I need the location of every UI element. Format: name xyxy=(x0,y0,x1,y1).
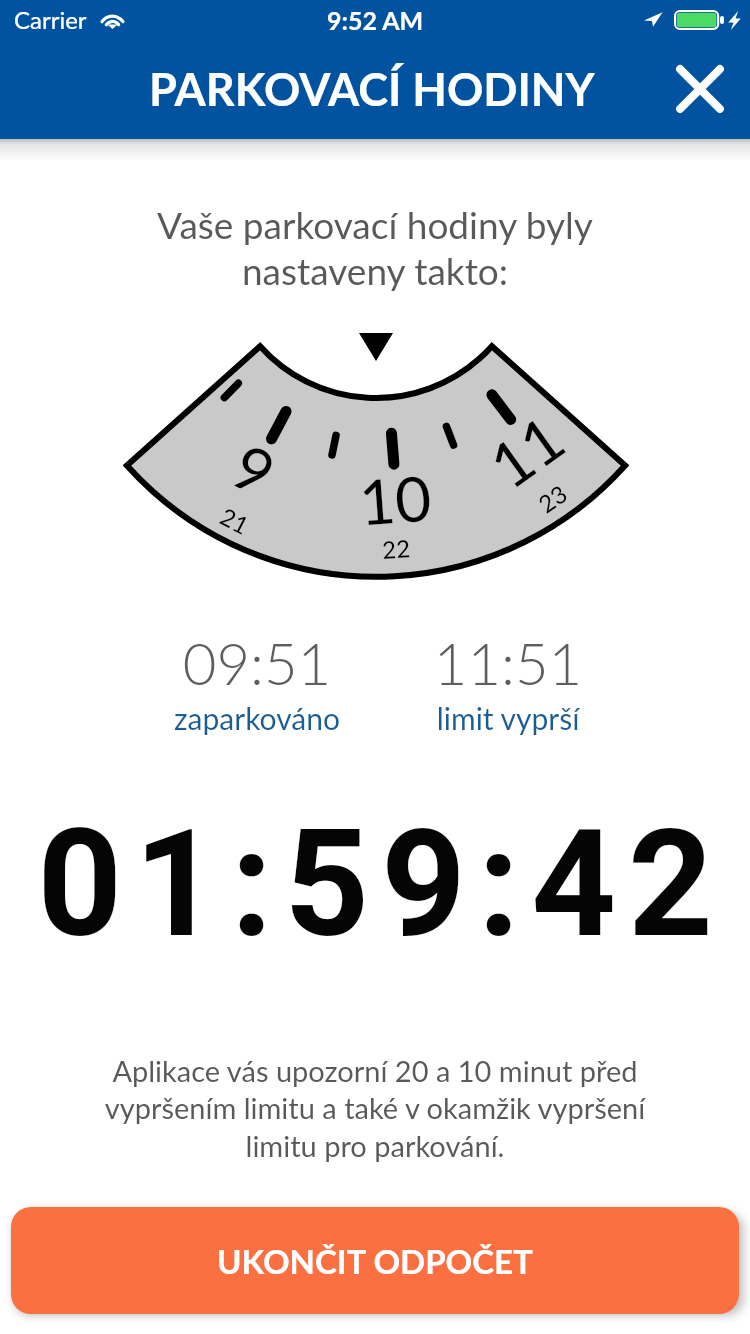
staticText: 10 xyxy=(356,459,434,539)
staticText: 22 xyxy=(381,533,411,564)
staticText: 09:51 xyxy=(172,628,342,698)
staticText: Vaše parkovací hodiny byly nastaveny tak… xyxy=(0,202,750,293)
button[interactable]: Close xyxy=(664,53,736,125)
staticText: 11 xyxy=(475,400,577,502)
staticText: UKONČIT ODPOČET xyxy=(217,1241,533,1281)
staticText: 11:51 xyxy=(432,628,584,698)
staticText: 01:59:42 xyxy=(6,798,750,971)
staticText: PARKOVACÍ HODINY xyxy=(149,62,595,116)
staticText: limit vyprší xyxy=(432,700,584,736)
staticText: Aplikace vás upozorní 20 a 10 minut před… xyxy=(0,1053,750,1163)
staticText: zaparkováno xyxy=(172,700,342,736)
staticText: Carrier xyxy=(14,5,87,34)
staticText: 9 xyxy=(221,428,287,510)
staticText: 21 xyxy=(216,501,254,540)
button[interactable]: UKONČIT ODPOČET xyxy=(11,1207,739,1314)
staticText: 23 xyxy=(532,478,572,518)
staticText: 9:52 AM xyxy=(327,5,424,35)
